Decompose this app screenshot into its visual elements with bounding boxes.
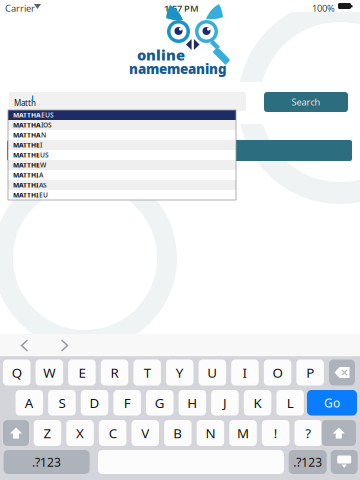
button[interactable]: F [113,390,141,415]
button[interactable]: W [36,359,63,385]
button[interactable]: ! [262,420,289,446]
staticText: EU [39,191,48,199]
staticText: A [39,171,43,179]
staticText: MATTHI [13,181,39,189]
button[interactable]: MATTHI [8,170,236,180]
staticText: Matth [14,97,36,108]
button[interactable]: Previous field [20,340,29,351]
button[interactable]: Q [3,359,30,385]
staticText: MATTHE [13,151,40,159]
button[interactable]: H [179,390,206,415]
staticText: U [207,364,217,381]
staticText: C [109,424,117,442]
staticText: Y [176,364,184,381]
button[interactable]: ? [294,420,322,446]
staticText: MATTHI [13,191,39,199]
button[interactable]: T [133,359,161,385]
staticText: MATTHE [13,141,40,149]
staticText: Search [291,96,320,108]
button[interactable]: Next field [60,340,69,351]
button[interactable]: MATTHA [8,120,236,130]
button[interactable]: MATTHI [8,190,236,200]
button[interactable]: G [146,390,173,415]
staticText: I [242,364,247,381]
staticText: Carrier [5,2,35,14]
button[interactable]: N [197,420,224,446]
button[interactable]: Name to search [9,92,246,111]
staticText: G [155,394,165,412]
button[interactable]: Shift [3,420,29,446]
staticText: W [40,161,46,169]
button[interactable]: J [211,390,239,415]
button[interactable]: MATTHA [8,110,236,120]
button[interactable]: U [199,359,226,385]
staticText: P [306,364,314,381]
staticText: Q [12,364,22,381]
staticText: MATTHA [13,111,41,119]
staticText: R [111,364,119,381]
button[interactable]: Z [34,420,61,446]
staticText: MATTHA [13,131,41,139]
button[interactable]: L [276,390,304,415]
staticText: .?123 [32,454,61,470]
staticText: K [254,394,262,412]
staticText: Go [324,395,340,411]
button[interactable]: O [264,359,291,385]
staticText: E [78,364,85,381]
button[interactable]: MATTHE [8,150,236,160]
button[interactable]: R [101,359,128,385]
staticText: ! [274,424,278,442]
staticText: X [76,424,84,442]
button[interactable]: .?123 [289,450,327,474]
button[interactable]: X [66,420,94,446]
staticText: MATTHI [13,171,39,179]
button[interactable]: K [244,390,271,415]
button[interactable]: MATTHE [8,140,236,150]
staticText: Z [43,424,51,442]
button[interactable]: D [81,390,108,415]
button[interactable]: Y [166,359,193,385]
staticText: online [137,45,185,64]
button[interactable]: Go [307,390,357,415]
staticText: D [89,394,99,412]
staticText: O [273,364,283,381]
staticText: H [187,394,197,412]
button[interactable]: I [231,359,259,385]
button[interactable]: E [68,359,96,385]
staticText: M [237,424,249,442]
staticText: ? [305,424,311,442]
button[interactable]: C [99,420,126,446]
staticText: 1:57 PM [164,2,199,14]
button[interactable]: A [16,390,43,415]
staticText: T [144,364,151,381]
button[interactable]: V [131,420,159,446]
staticText: MATTHE [13,161,40,169]
button[interactable]: S [48,390,76,415]
staticText: S [58,394,65,412]
staticText: A [25,394,34,412]
staticText: F [124,394,131,412]
button[interactable]: Search [264,92,348,112]
button[interactable]: P [296,359,324,385]
staticText: IOS [41,121,52,129]
button[interactable]: Delete [329,359,355,385]
button[interactable]: M [229,420,257,446]
staticText: L [287,394,294,412]
staticText: US [40,151,49,159]
staticText: EUS [41,111,54,119]
staticText: MATTHA [13,121,41,129]
button[interactable]: .?123 [4,450,90,474]
staticText: 100% [312,2,335,14]
staticText: namemeaning [129,60,227,78]
button[interactable]: MATTHE [8,160,236,170]
button[interactable]: MATTHA [8,130,236,140]
staticText: .?123 [293,454,322,470]
staticText: I [40,141,42,149]
button[interactable]: B [164,420,192,446]
staticText: V [141,424,149,442]
staticText: J [223,394,227,412]
button[interactable]: Shift [321,420,356,446]
button[interactable]: MATTHI [8,180,236,190]
button[interactable]: Hide keyboard [331,450,358,474]
